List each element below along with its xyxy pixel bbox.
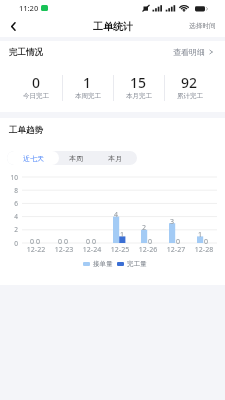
- staticText: 接单量: [93, 260, 113, 268]
- staticText: 0: [0, 239, 18, 248]
- staticText: 12-25: [106, 245, 134, 255]
- staticText: 本周: [69, 154, 83, 163]
- staticText: 12-27: [162, 245, 190, 255]
- staticText: 92: [181, 73, 198, 92]
- button[interactable]: 查看明细: [165, 43, 225, 61]
- staticText: 12-24: [78, 245, 106, 255]
- staticText: 10: [0, 173, 18, 182]
- staticText: 12-22: [22, 245, 50, 255]
- staticText: 0: [32, 73, 41, 92]
- button[interactable]: 15: [113, 71, 164, 104]
- staticText: 0: [59, 237, 73, 247]
- staticText: 11:20: [19, 3, 39, 13]
- staticText: 0: [53, 237, 67, 247]
- staticText: 3: [165, 217, 179, 227]
- staticText: 0: [171, 237, 185, 247]
- staticText: 4: [109, 210, 123, 220]
- button[interactable]: 近七天: [7, 151, 59, 165]
- button[interactable]: 本周: [59, 151, 93, 165]
- staticText: 工单统计: [93, 20, 133, 33]
- staticText: 1: [115, 230, 129, 240]
- staticText: 本周完工: [75, 92, 101, 100]
- button[interactable]: 本月: [93, 151, 137, 165]
- staticText: 累计完工: [177, 92, 203, 100]
- staticText: 0: [31, 237, 45, 247]
- staticText: 12-23: [50, 245, 78, 255]
- staticText: 1: [193, 230, 207, 240]
- button[interactable]: Back: [0, 15, 26, 37]
- button[interactable]: 92: [164, 71, 215, 104]
- staticText: 完工量: [127, 260, 147, 268]
- staticText: 0: [25, 237, 39, 247]
- staticText: 近七天: [23, 154, 44, 163]
- staticText: 12-26: [134, 245, 162, 255]
- staticText: 15: [130, 73, 147, 92]
- staticText: 选择时间: [189, 22, 216, 30]
- staticText: 0: [199, 237, 213, 247]
- staticText: 今日完工: [23, 92, 49, 100]
- button[interactable]: 0: [10, 71, 62, 104]
- staticText: 1: [83, 73, 92, 92]
- staticText: 完工情况: [9, 47, 43, 58]
- staticText: 12-28: [190, 245, 218, 255]
- staticText: 查看明细: [173, 47, 205, 57]
- staticText: 4: [0, 212, 18, 221]
- staticText: 0: [143, 237, 157, 247]
- staticText: 本月完工: [126, 92, 152, 100]
- button[interactable]: 1: [62, 71, 113, 104]
- staticText: 6: [0, 199, 18, 208]
- staticText: 2: [0, 225, 18, 234]
- staticText: 8: [0, 186, 18, 195]
- staticText: 2: [137, 223, 151, 233]
- staticText: 本月: [108, 154, 122, 163]
- staticText: 0: [87, 237, 101, 247]
- staticText: 工单趋势: [9, 125, 43, 136]
- staticText: 0: [81, 237, 95, 247]
- button[interactable]: 选择时间: [181, 17, 225, 35]
